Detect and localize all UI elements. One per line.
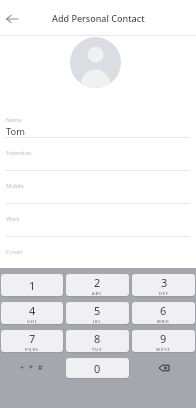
staticText: GHI xyxy=(27,319,38,324)
staticText: JKL xyxy=(93,319,102,324)
button[interactable]: 9 xyxy=(132,330,195,352)
staticText: Work xyxy=(6,215,20,222)
button[interactable]: Mobile xyxy=(0,171,196,204)
button[interactable]: 3 xyxy=(132,274,195,296)
button[interactable]: 6 xyxy=(132,302,195,324)
staticText: WXYZ xyxy=(156,347,171,352)
button[interactable]: Backspace xyxy=(132,358,195,378)
staticText: 4 xyxy=(29,303,36,318)
staticText: Mobile xyxy=(6,182,24,189)
staticText: 6 xyxy=(160,303,167,318)
staticText: E-mail xyxy=(6,248,22,255)
button[interactable]: Name xyxy=(0,105,196,138)
button[interactable]: 2 xyxy=(66,274,129,296)
staticText: DEF xyxy=(159,291,169,296)
staticText: 0 xyxy=(94,361,101,376)
staticText: MNO xyxy=(157,319,170,324)
button[interactable]: 8 xyxy=(66,330,129,352)
button[interactable]: Extension xyxy=(0,138,196,171)
staticText: 9 xyxy=(160,331,167,346)
button[interactable]: 0 xyxy=(66,358,129,378)
staticText: ABC xyxy=(92,291,103,296)
button[interactable]: 7 xyxy=(1,330,63,352)
button[interactable]: E-mail xyxy=(0,237,196,270)
staticText: 2 xyxy=(94,275,101,290)
staticText: 8 xyxy=(94,331,101,346)
staticText: 7 xyxy=(29,331,36,346)
staticText: PQRS xyxy=(25,347,39,352)
staticText: Extension xyxy=(6,149,32,156)
button[interactable]: Back xyxy=(2,9,22,29)
button[interactable]: Work xyxy=(0,204,196,237)
staticText: + * # xyxy=(20,363,45,373)
staticText: TUV xyxy=(92,347,103,352)
button[interactable]: Add photo xyxy=(70,37,121,88)
button[interactable]: 1 xyxy=(1,274,63,296)
staticText: Add Personal Contact xyxy=(52,12,145,24)
staticText: 3 xyxy=(161,275,168,290)
staticText: Tom xyxy=(6,125,25,138)
staticText: 1 xyxy=(29,278,36,293)
button[interactable]: + * # xyxy=(1,358,63,378)
button[interactable]: 4 xyxy=(1,302,63,324)
staticText: 5 xyxy=(94,303,101,318)
button[interactable]: 5 xyxy=(66,302,129,324)
staticText: Name xyxy=(6,116,22,123)
